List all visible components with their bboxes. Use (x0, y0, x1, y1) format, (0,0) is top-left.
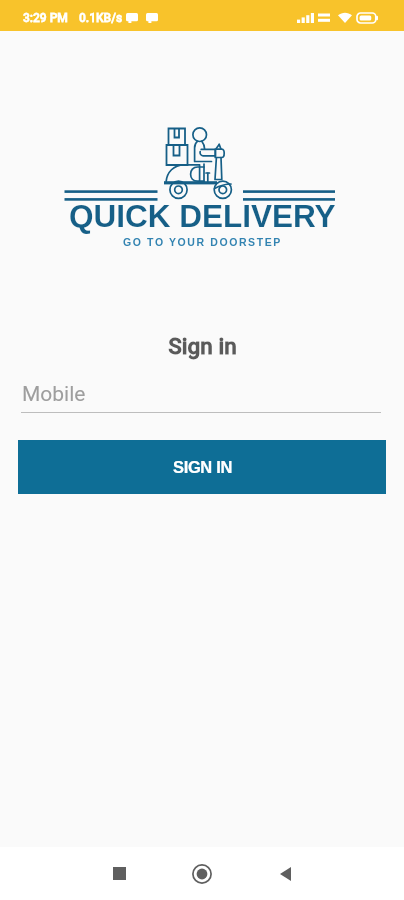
button[interactable]: Back (257, 847, 313, 900)
staticText: 0.1KB/s (79, 11, 123, 25)
button[interactable]: Home (174, 847, 230, 900)
staticText: 3:29 PM (23, 11, 68, 25)
staticText: Sign in (168, 333, 237, 359)
button[interactable]: Recents (91, 847, 147, 900)
staticText: GO TO YOUR DOORSTEP (123, 236, 282, 248)
button[interactable]: SIGN IN (18, 440, 386, 494)
staticText: QUICK DELIVERY (69, 198, 336, 233)
staticText: SIGN IN (173, 458, 232, 476)
button[interactable]: Mobile (21, 381, 381, 413)
staticText: Mobile (22, 382, 86, 407)
